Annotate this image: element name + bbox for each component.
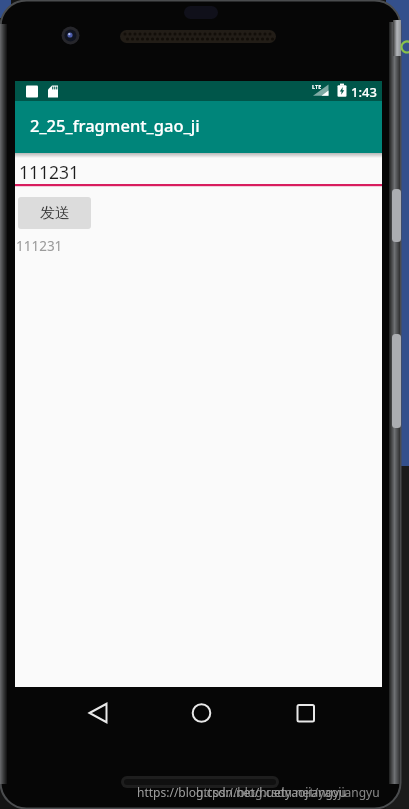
- staticText: https://blog.csdn.net/yaojiangyu: [196, 784, 380, 800]
- staticText: 111231: [19, 160, 80, 184]
- staticText: 发送: [40, 204, 70, 223]
- button[interactable]: [74, 689, 122, 737]
- staticText: LTE: [312, 83, 322, 90]
- staticText: 111231: [16, 237, 63, 255]
- staticText: https://blog.csdn.net/huetyaojiangyu: [137, 784, 347, 800]
- button[interactable]: [282, 689, 330, 737]
- staticText: 2_25_fragment_gao_ji: [30, 114, 200, 136]
- button[interactable]: [178, 689, 226, 737]
- button[interactable]: 发送: [18, 197, 91, 229]
- staticText: 1:43: [351, 83, 377, 101]
- button[interactable]: 111231: [15, 155, 382, 186]
